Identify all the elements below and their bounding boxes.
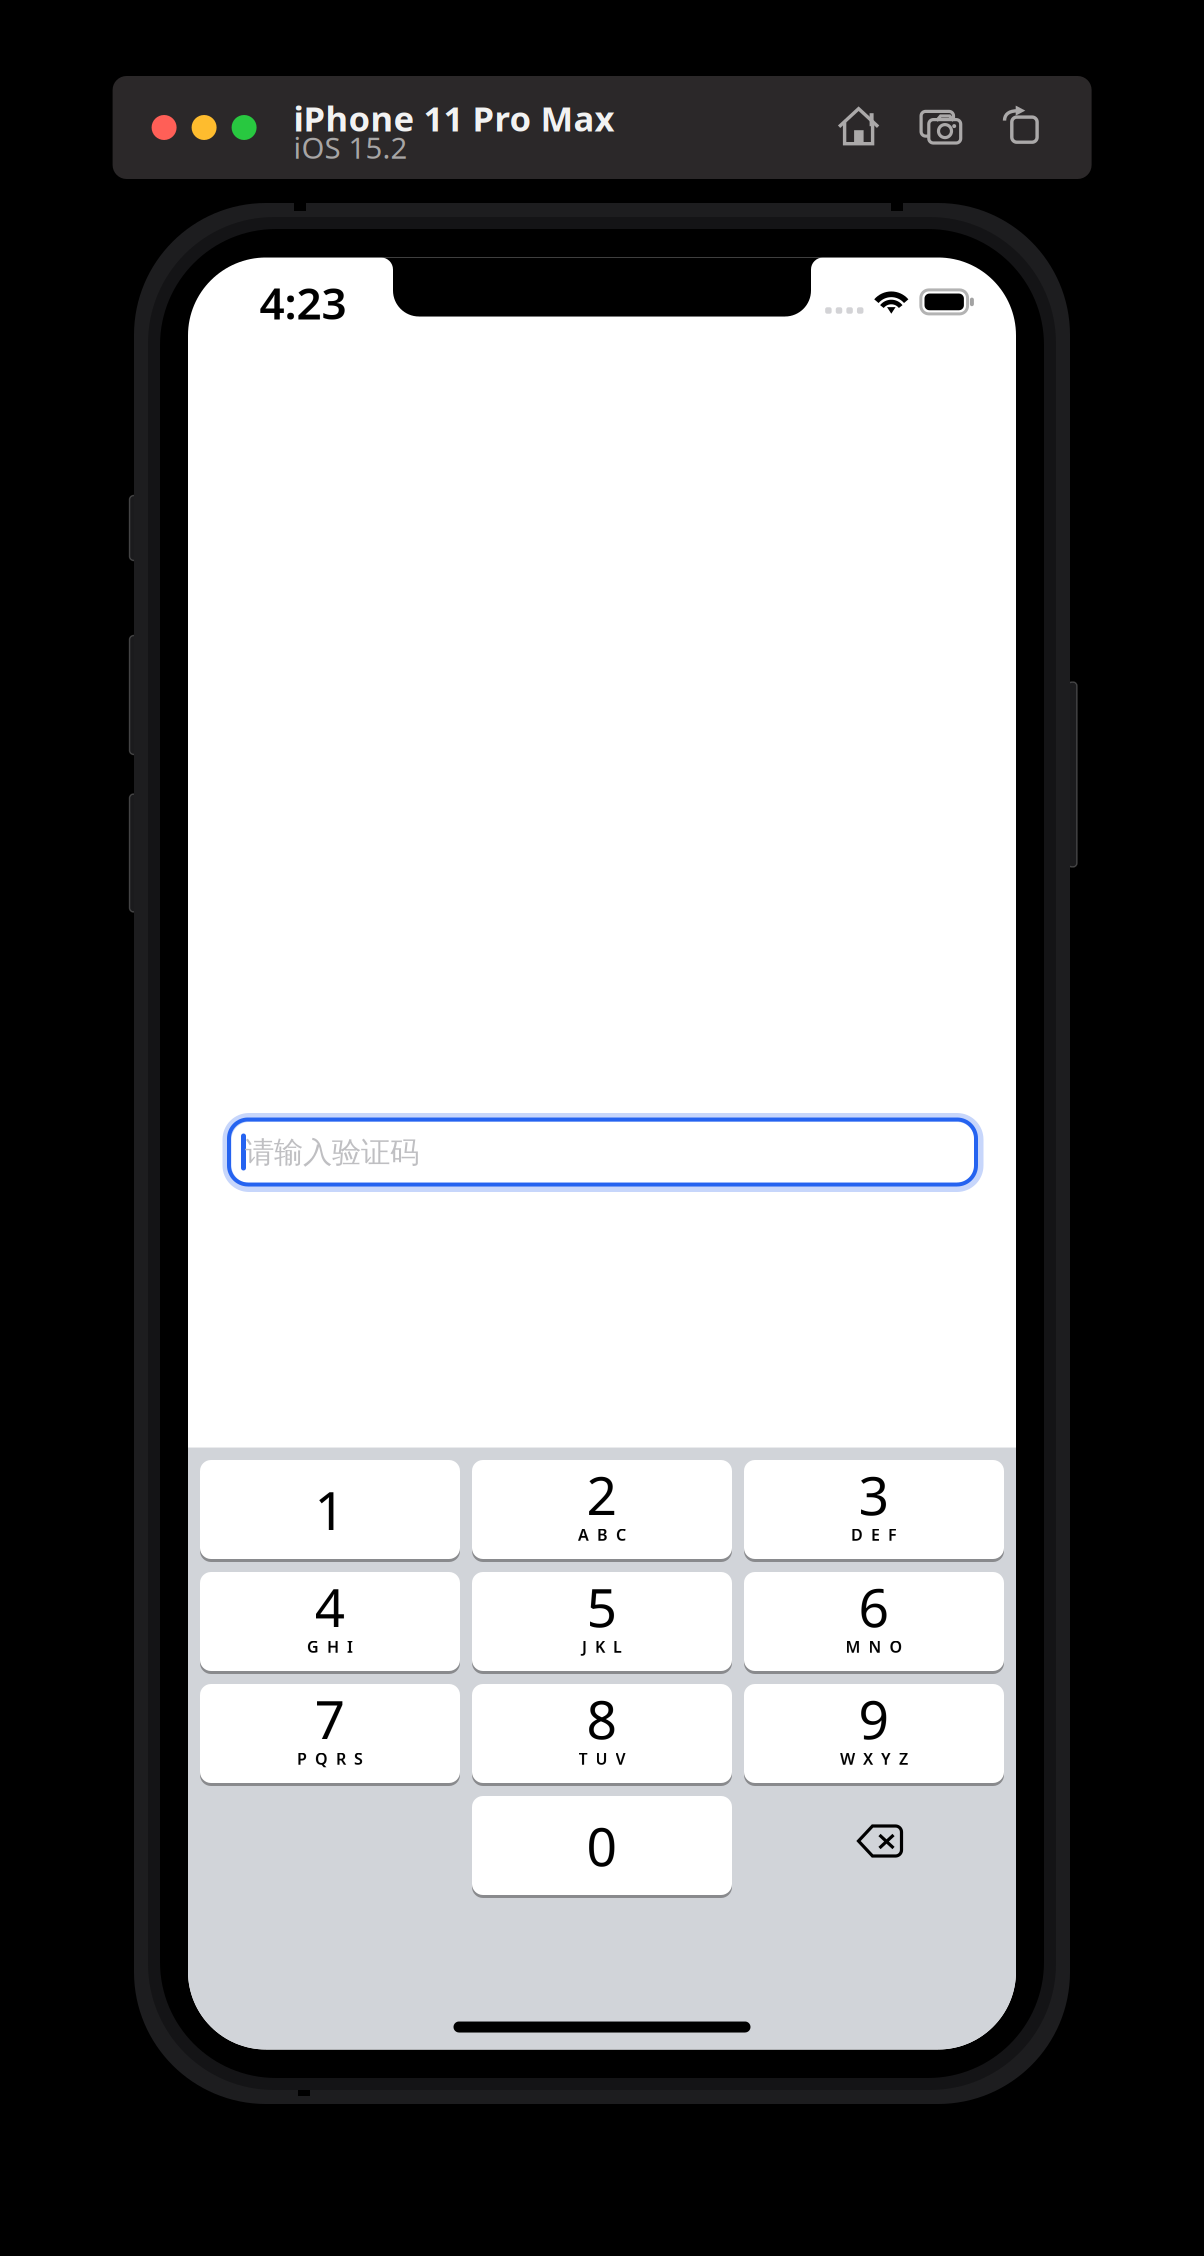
staticText: S bbox=[354, 1748, 363, 1769]
staticText: 4:23 bbox=[259, 273, 346, 332]
staticText: W bbox=[840, 1748, 855, 1769]
staticText: I bbox=[347, 1636, 353, 1657]
button[interactable]: Rotate bbox=[1002, 105, 1046, 149]
button[interactable]: 8 bbox=[472, 1682, 732, 1784]
staticText: 2 bbox=[586, 1459, 617, 1530]
staticText: O bbox=[889, 1636, 902, 1657]
staticText: G bbox=[307, 1636, 319, 1657]
staticText: iPhone 11 Pro Max bbox=[294, 95, 615, 141]
staticText: 请输入验证码 bbox=[245, 1134, 419, 1170]
staticText: L bbox=[613, 1636, 622, 1657]
button[interactable]: 1 bbox=[200, 1458, 460, 1560]
button[interactable]: Minimize bbox=[192, 115, 217, 140]
staticText: Z bbox=[899, 1748, 908, 1769]
staticText: V bbox=[615, 1748, 625, 1769]
staticText: 7 bbox=[314, 1683, 345, 1754]
staticText: U bbox=[595, 1748, 607, 1769]
staticText: 1 bbox=[314, 1474, 345, 1545]
staticText: P bbox=[297, 1748, 307, 1769]
button[interactable]: 9 bbox=[744, 1682, 1004, 1784]
button[interactable]: Close bbox=[152, 115, 177, 140]
staticText: K bbox=[595, 1636, 605, 1657]
button[interactable]: 4 bbox=[200, 1570, 460, 1672]
staticText: iOS 15.2 bbox=[294, 128, 408, 167]
staticText: 0 bbox=[586, 1810, 617, 1881]
staticText: C bbox=[616, 1524, 626, 1545]
staticText: 4 bbox=[314, 1571, 345, 1642]
button[interactable]: 7 bbox=[200, 1682, 460, 1784]
button[interactable]: Delete bbox=[749, 1791, 1009, 1890]
button[interactable]: Zoom bbox=[232, 115, 257, 140]
button[interactable]: 5 bbox=[472, 1570, 732, 1672]
staticText: 5 bbox=[586, 1571, 617, 1642]
staticText: Y bbox=[881, 1748, 891, 1769]
staticText: 6 bbox=[858, 1571, 889, 1642]
staticText: B bbox=[597, 1524, 608, 1545]
staticText: J bbox=[582, 1636, 587, 1657]
button[interactable]: Home bbox=[838, 104, 882, 148]
staticText: F bbox=[888, 1524, 897, 1545]
staticText: N bbox=[868, 1636, 881, 1657]
button[interactable]: 3 bbox=[744, 1458, 1004, 1560]
staticText: H bbox=[327, 1636, 339, 1657]
staticText: 9 bbox=[858, 1683, 889, 1754]
staticText: E bbox=[871, 1524, 880, 1545]
button[interactable]: 2 bbox=[472, 1458, 732, 1560]
staticText: R bbox=[336, 1748, 346, 1769]
staticText: 8 bbox=[586, 1683, 617, 1754]
staticText: A bbox=[578, 1524, 589, 1545]
staticText: T bbox=[578, 1748, 587, 1769]
button[interactable]: 6 bbox=[744, 1570, 1004, 1672]
button[interactable]: Screenshot bbox=[920, 108, 964, 152]
staticText: M bbox=[845, 1636, 860, 1657]
staticText: Q bbox=[315, 1748, 328, 1769]
button[interactable]: 0 bbox=[472, 1794, 732, 1896]
staticText: D bbox=[851, 1524, 863, 1545]
staticText: X bbox=[863, 1748, 873, 1769]
staticText: 3 bbox=[858, 1459, 889, 1530]
